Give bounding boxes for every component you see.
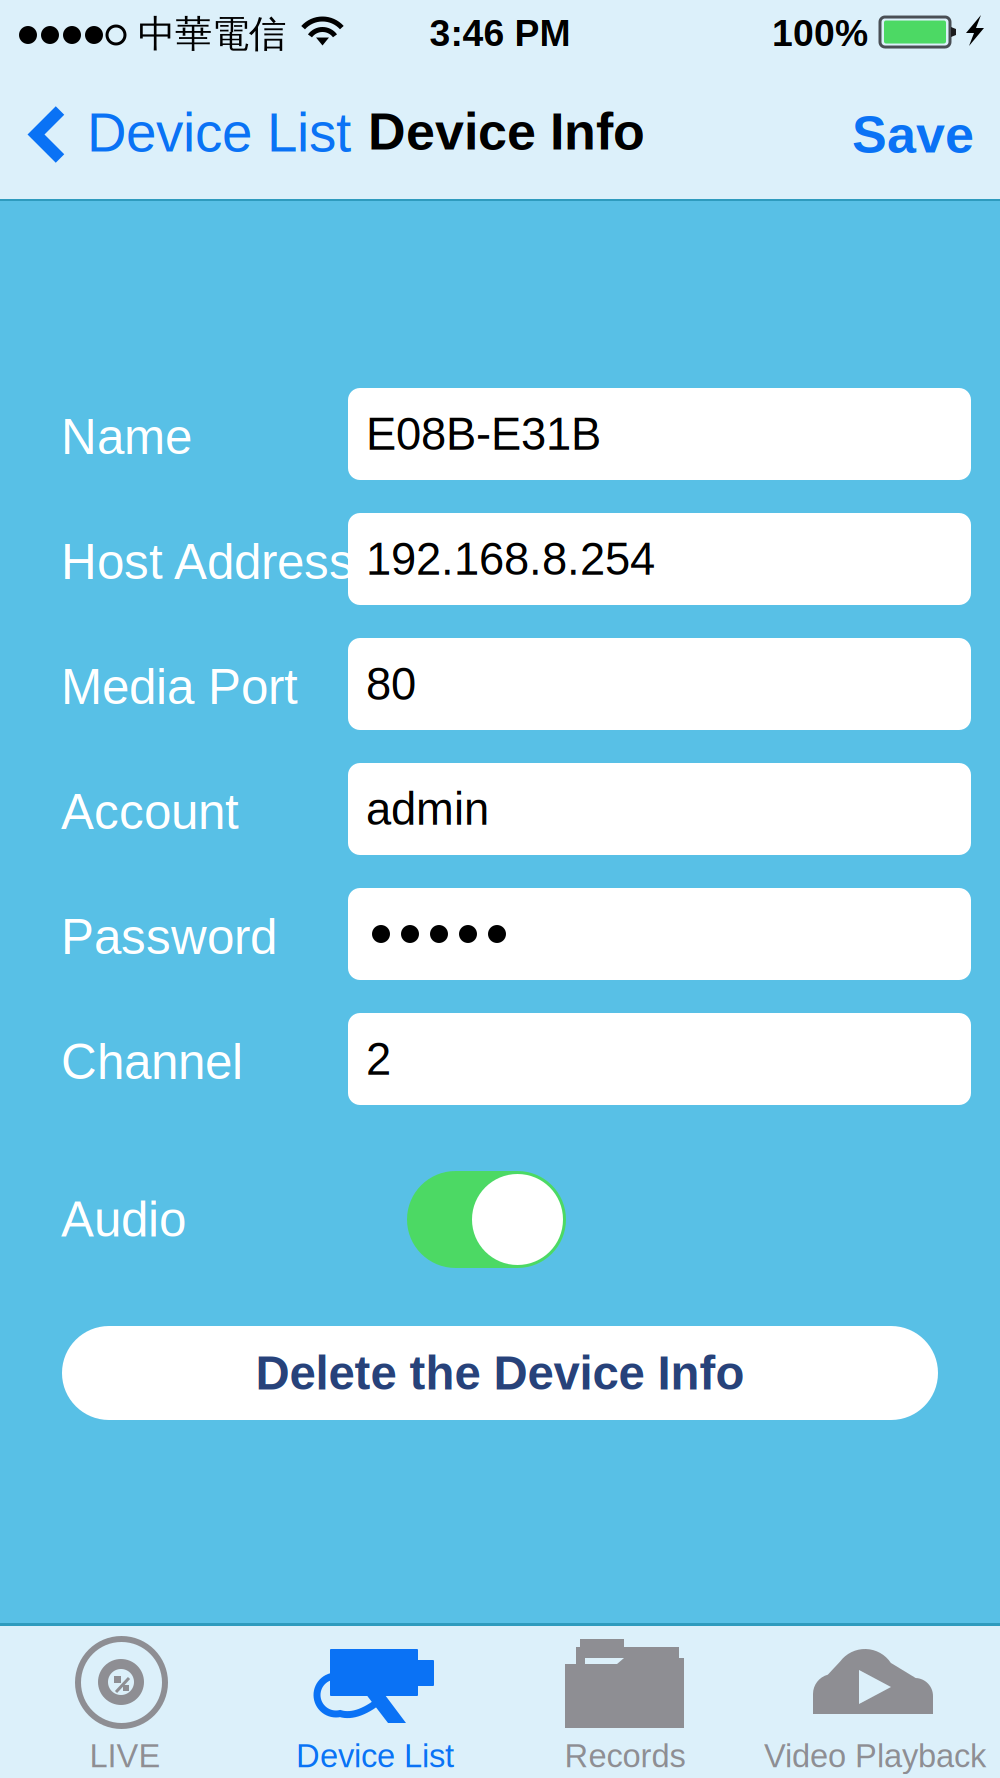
button[interactable]: LIVE	[0, 1626, 250, 1778]
staticText: Password	[61, 909, 277, 964]
staticText: Delete the Device Info	[255, 1347, 744, 1399]
staticText: 2	[366, 1034, 391, 1084]
staticText: Name	[61, 409, 192, 464]
staticText: Save	[852, 105, 974, 164]
staticText: Channel	[61, 1034, 243, 1089]
staticText: 3:46 PM	[429, 12, 570, 54]
staticText: Records	[564, 1738, 685, 1774]
staticText: admin	[366, 784, 489, 834]
staticText: Video Playback	[764, 1738, 986, 1774]
staticText: 中華電信	[138, 10, 286, 57]
staticText: E08B-E31B	[366, 409, 601, 459]
staticText: 80	[366, 659, 416, 709]
button[interactable]: Delete the Device Info	[62, 1326, 938, 1420]
button[interactable]: Save	[850, 70, 974, 199]
button[interactable]: Records	[500, 1626, 750, 1778]
staticText: Account	[61, 784, 239, 839]
staticText: Media Port	[61, 659, 298, 714]
staticText: 192.168.8.254	[366, 534, 655, 584]
staticText: Audio	[61, 1192, 186, 1247]
button[interactable]: Video Playback	[750, 1626, 1000, 1778]
staticText: Host Address	[61, 534, 354, 589]
button[interactable]: Audio on	[407, 1171, 566, 1268]
staticText: Device List	[296, 1738, 454, 1774]
button[interactable]: Device List	[28, 70, 351, 199]
staticText: LIVE	[89, 1738, 160, 1774]
button[interactable]: Device List	[250, 1626, 500, 1778]
staticText: 100%	[772, 12, 868, 54]
staticText: Device List	[87, 102, 351, 163]
staticText: Device Info	[368, 102, 645, 161]
